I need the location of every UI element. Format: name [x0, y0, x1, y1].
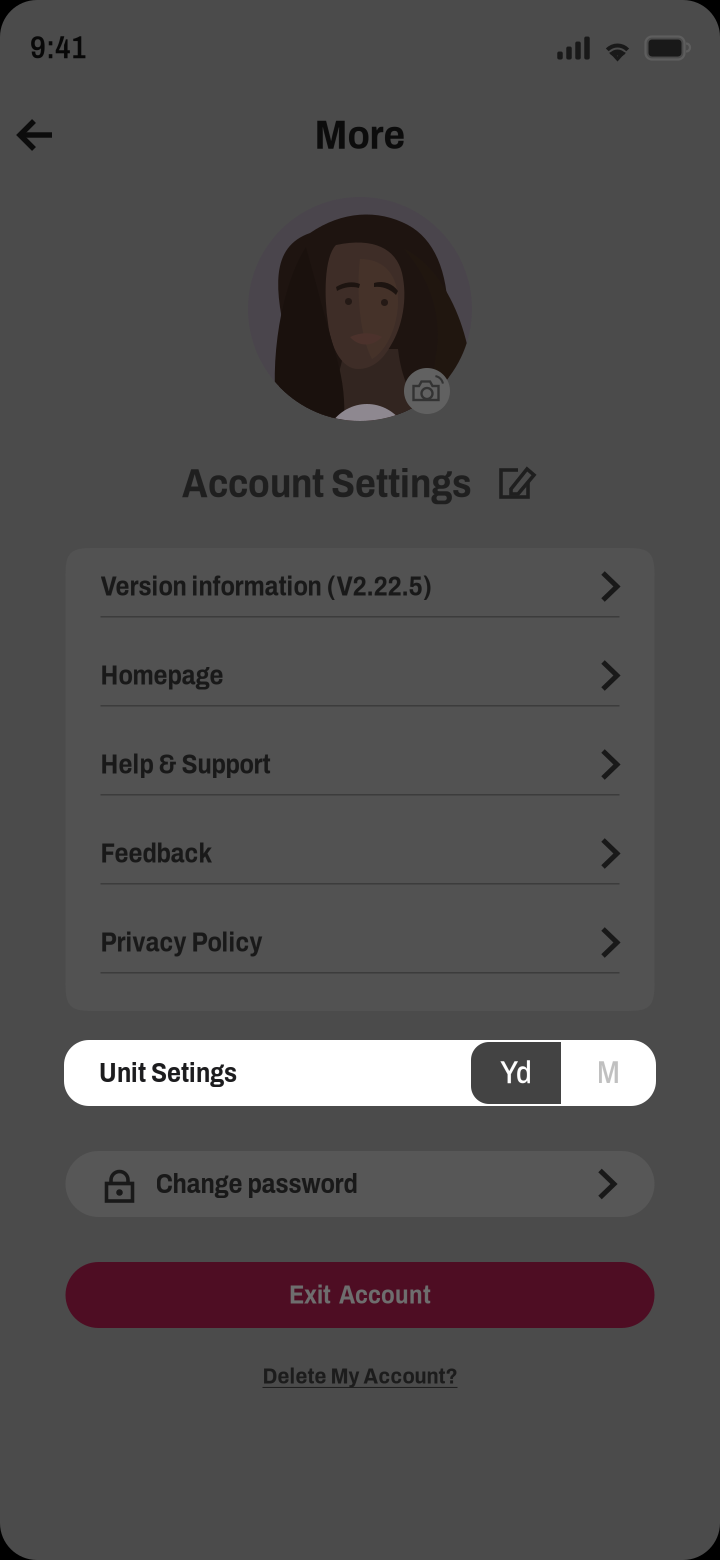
button[interactable]: Privacy Policy — [65, 913, 654, 1002]
button[interactable]: Back — [0, 103, 72, 167]
staticText: Account Settings — [182, 462, 472, 506]
button[interactable]: Yd — [471, 1042, 561, 1104]
button[interactable]: Edit profile — [498, 464, 538, 504]
staticText: Change password — [155, 1169, 357, 1198]
staticText: Version information (V2.22.5) — [100, 572, 432, 601]
button[interactable]: Feedback — [65, 824, 654, 913]
button[interactable]: Change profile photo — [404, 368, 450, 414]
button[interactable]: Exit Account — [65, 1262, 654, 1328]
button[interactable]: Help & Support — [65, 735, 654, 824]
button[interactable]: Unit Setings — [64, 1040, 237, 1106]
staticText: Privacy Policy — [100, 928, 262, 957]
staticText: Homepage — [100, 661, 223, 690]
staticText: Yd — [500, 1056, 532, 1090]
staticText: Exit Account — [289, 1281, 431, 1309]
staticText: Delete My Account? — [262, 1364, 457, 1388]
staticText: More — [314, 112, 405, 157]
button[interactable]: Change password — [65, 1151, 654, 1217]
staticText: Help & Support — [100, 750, 270, 779]
button[interactable]: M — [561, 1042, 656, 1104]
button[interactable]: Delete My Account? — [262, 1356, 457, 1396]
staticText: 9:41 — [30, 31, 86, 65]
button[interactable]: Homepage — [65, 646, 654, 735]
staticText: Feedback — [100, 839, 212, 868]
staticText: Unit Setings — [99, 1058, 237, 1087]
staticText: M — [596, 1056, 620, 1090]
button[interactable]: Version information (V2.22.5) — [65, 557, 654, 646]
